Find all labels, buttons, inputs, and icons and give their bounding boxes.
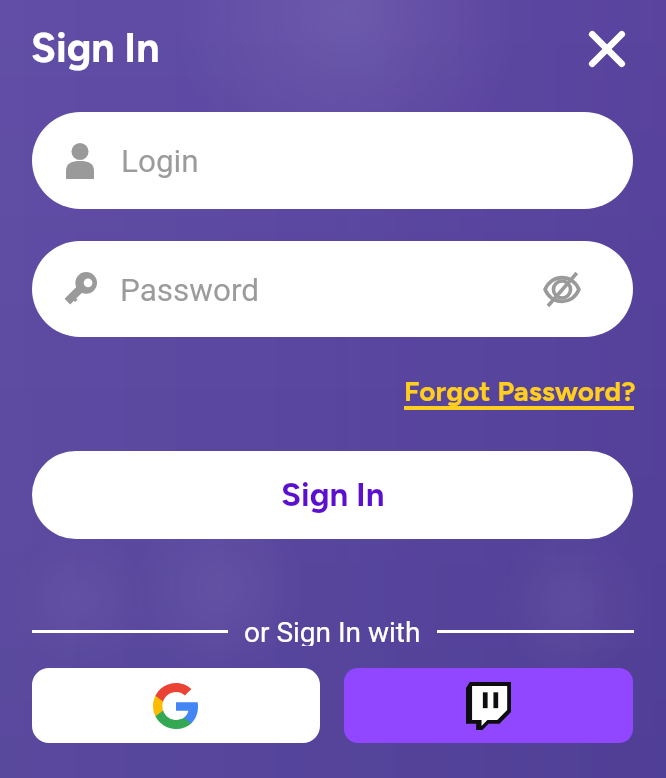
button[interactable]: Show password (534, 261, 590, 317)
staticText: or Sign In with (244, 616, 421, 646)
staticText: Password (120, 272, 260, 309)
button[interactable]: Password (32, 241, 633, 337)
button[interactable]: Forgot Password? (402, 370, 634, 414)
staticText: Login (121, 143, 199, 180)
button[interactable]: Sign in with Twitch (344, 668, 633, 743)
staticText: Sign In (281, 475, 385, 515)
button[interactable]: Sign in with Google (32, 668, 320, 743)
button[interactable]: Sign In (32, 451, 633, 539)
staticText: Forgot Password? (404, 374, 636, 408)
button[interactable]: Login (32, 112, 633, 209)
button[interactable]: Close (579, 21, 635, 77)
staticText: Sign In (31, 23, 160, 72)
